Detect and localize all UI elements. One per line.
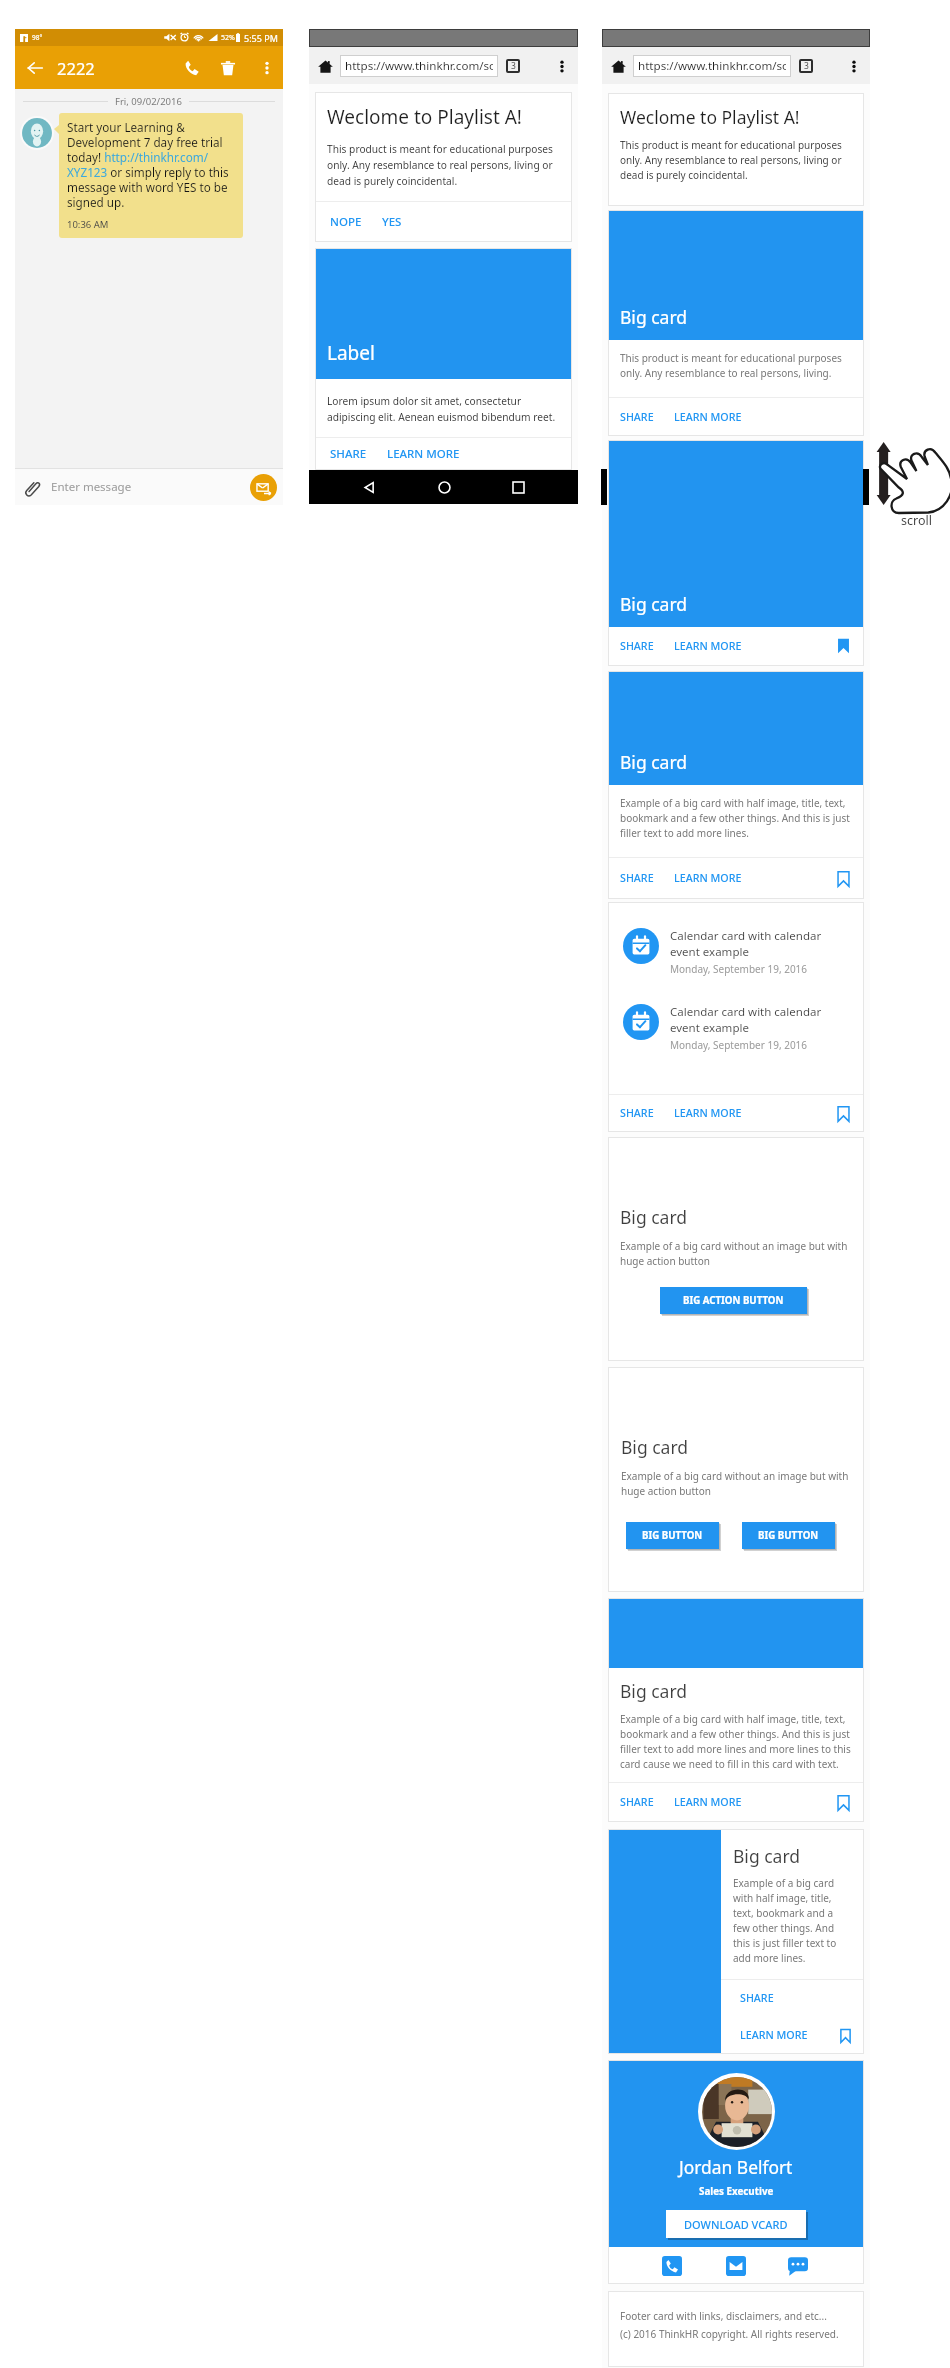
staticText: Lorem ipsum dolor sit amet, consectetur … — [327, 394, 560, 424]
button[interactable]: LEARN MORE — [664, 1099, 752, 1128]
staticText: Example of a big card with half image, t… — [620, 796, 852, 840]
staticText: Big card — [620, 305, 688, 329]
button[interactable]: BIG BUTTON — [742, 1522, 835, 1549]
staticText: Calendar card with calendar event exampl… — [670, 1004, 822, 1035]
button[interactable]: Back — [354, 472, 384, 502]
staticText: SHARE — [620, 871, 654, 886]
staticText: Big card — [620, 592, 688, 616]
staticText: Big card — [620, 750, 688, 774]
staticText: 52% — [221, 33, 235, 43]
button[interactable]: YES — [372, 207, 412, 237]
staticText: 98° — [32, 33, 43, 42]
button[interactable]: Bookmark — [834, 2025, 856, 2047]
button[interactable]: More options — [549, 53, 575, 79]
button[interactable]: Home — [314, 55, 336, 77]
staticText: BIG BUTTON — [642, 1529, 703, 1542]
button[interactable]: BIG BUTTON — [626, 1522, 719, 1549]
staticText: LEARN MORE — [674, 1795, 742, 1810]
button[interactable]: SHARE — [730, 1984, 784, 2013]
staticText: Big card — [620, 1205, 688, 1229]
staticText: Example of a big card with half image, t… — [733, 1876, 852, 1965]
staticText: 3 — [804, 60, 809, 72]
button[interactable]: Home — [607, 55, 629, 77]
button[interactable]: More options — [841, 53, 867, 79]
staticText: Example of a big card with half image, t… — [620, 1712, 852, 1771]
staticText: SHARE — [620, 1106, 654, 1121]
button[interactable]: Message — [786, 2254, 810, 2278]
button[interactable]: Email — [724, 2254, 748, 2278]
staticText: Start your Learning & Development 7 day … — [67, 119, 235, 211]
button[interactable]: Bookmark — [832, 1103, 854, 1125]
staticText: NOPE — [330, 214, 362, 230]
staticText: SHARE — [620, 1795, 654, 1810]
button[interactable]: SHARE — [610, 403, 664, 432]
button[interactable]: SHARE — [610, 1788, 664, 1817]
button[interactable]: Bookmark — [832, 635, 854, 657]
staticText: SHARE — [740, 1991, 774, 2006]
staticText: Label — [327, 340, 375, 366]
staticText: Jordan Belfort — [679, 2155, 793, 2179]
staticText: Sales Executive — [699, 2185, 774, 2198]
staticText: LEARN MORE — [674, 410, 742, 425]
button[interactable]: SHARE — [320, 439, 377, 469]
staticText: Calendar card with calendar event exampl… — [670, 928, 822, 959]
staticText: Weclome to Playlist A! — [327, 104, 522, 130]
button[interactable]: Call — [660, 2254, 684, 2278]
button[interactable]: Attach — [19, 474, 45, 500]
button[interactable]: Send message — [250, 474, 277, 501]
staticText: Weclome to Playlist A! — [620, 105, 800, 129]
button[interactable]: Call — [178, 54, 206, 82]
staticText: This product is meant for educational pu… — [620, 351, 852, 380]
staticText: This product is meant for educational pu… — [620, 138, 852, 182]
button[interactable]: SHARE — [610, 632, 664, 661]
button[interactable]: Tabs — [506, 59, 520, 73]
staticText: Example of a big card without an image b… — [620, 1239, 852, 1268]
staticText: Footer card with links, disclaimers, and… — [620, 2309, 827, 2323]
staticText: This product is meant for educational pu… — [327, 142, 560, 188]
button[interactable]: Bookmark — [832, 1792, 854, 1814]
staticText: LEARN MORE — [740, 2028, 808, 2043]
button[interactable]: Tabs — [799, 59, 813, 73]
button[interactable]: NOPE — [320, 207, 372, 237]
staticText: LEARN MORE — [387, 446, 460, 462]
button[interactable]: SHARE — [610, 1099, 664, 1128]
button[interactable]: LEARN MORE — [664, 403, 752, 432]
staticText: SHARE — [620, 410, 654, 425]
staticText: Fri, 09/02/2016 — [115, 95, 182, 108]
button[interactable]: SHARE — [610, 864, 664, 893]
staticText: SHARE — [620, 639, 654, 654]
button[interactable]: LEARN MORE — [664, 632, 752, 661]
button[interactable]: LEARN MORE — [664, 864, 752, 893]
button[interactable]: BIG ACTION BUTTON — [660, 1287, 807, 1314]
staticText: https://www.thinkhr.com/somethin — [345, 58, 493, 74]
staticText: YES — [382, 214, 402, 230]
button[interactable]: LEARN MORE — [730, 2021, 818, 2050]
staticText: Monday, September 19, 2016 — [670, 962, 808, 976]
staticText: 10:36 AM — [67, 218, 109, 231]
button[interactable]: More options — [254, 55, 280, 81]
staticText: Monday, September 19, 2016 — [670, 1038, 808, 1052]
button[interactable]: DOWNLOAD VCARD — [666, 2210, 806, 2238]
staticText: LEARN MORE — [674, 871, 742, 886]
staticText: Example of a big card without an image b… — [621, 1469, 851, 1498]
staticText: Enter message — [51, 479, 132, 495]
button[interactable]: Bookmark — [832, 868, 854, 890]
button[interactable]: LEARN MORE — [377, 439, 470, 469]
button[interactable]: Delete — [214, 54, 242, 82]
staticText: 2222 — [57, 57, 95, 79]
staticText: 5:55 PM — [244, 32, 278, 44]
staticText: (c) 2016 ThinkHR copyright. All rights r… — [620, 2327, 839, 2341]
button[interactable]: LEARN MORE — [664, 1788, 752, 1817]
staticText: BIG ACTION BUTTON — [683, 1294, 784, 1307]
staticText: Big card — [620, 1679, 688, 1703]
staticText: Big card — [733, 1844, 801, 1868]
staticText: SHARE — [330, 446, 367, 462]
staticText: DOWNLOAD VCARD — [684, 2217, 788, 2232]
button[interactable]: Back — [22, 55, 48, 81]
staticText: LEARN MORE — [674, 639, 742, 654]
staticText: 3 — [511, 60, 516, 72]
button[interactable]: Home — [429, 472, 459, 502]
button[interactable]: Recents — [503, 472, 533, 502]
staticText: https://www.thinkhr.com/somethin — [638, 58, 786, 74]
staticText: BIG BUTTON — [758, 1529, 819, 1542]
